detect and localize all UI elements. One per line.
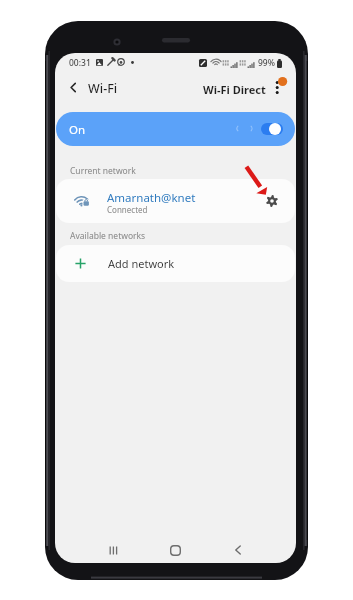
staticText: Add network bbox=[108, 256, 175, 271]
button[interactable]: On bbox=[56, 112, 295, 146]
button[interactable]: More options bbox=[267, 74, 289, 96]
button[interactable]: Wi-Fi switch bbox=[261, 123, 283, 135]
button[interactable]: Network settings bbox=[261, 190, 283, 212]
staticText: Wi-Fi Direct bbox=[203, 82, 266, 97]
button[interactable]: Wi-Fi bbox=[88, 79, 118, 97]
staticText: On bbox=[69, 122, 86, 138]
staticText: 00:31 bbox=[69, 57, 91, 69]
staticText: Connected bbox=[107, 204, 148, 215]
button[interactable]: Add network bbox=[56, 245, 295, 282]
staticText: 99% bbox=[258, 57, 275, 69]
staticText: Available networks bbox=[70, 230, 146, 242]
button[interactable]: Home bbox=[164, 539, 186, 561]
staticText: Current network bbox=[70, 165, 136, 177]
staticText: Amarnath@knet bbox=[107, 190, 196, 206]
button[interactable]: Navigate up bbox=[63, 77, 83, 97]
staticText: Wi-Fi bbox=[88, 80, 118, 97]
button[interactable]: Amarnath@knet bbox=[56, 179, 295, 223]
button[interactable]: Recents bbox=[102, 539, 124, 561]
button[interactable]: Back bbox=[227, 539, 249, 561]
button[interactable]: Wi-Fi Direct bbox=[203, 80, 266, 98]
